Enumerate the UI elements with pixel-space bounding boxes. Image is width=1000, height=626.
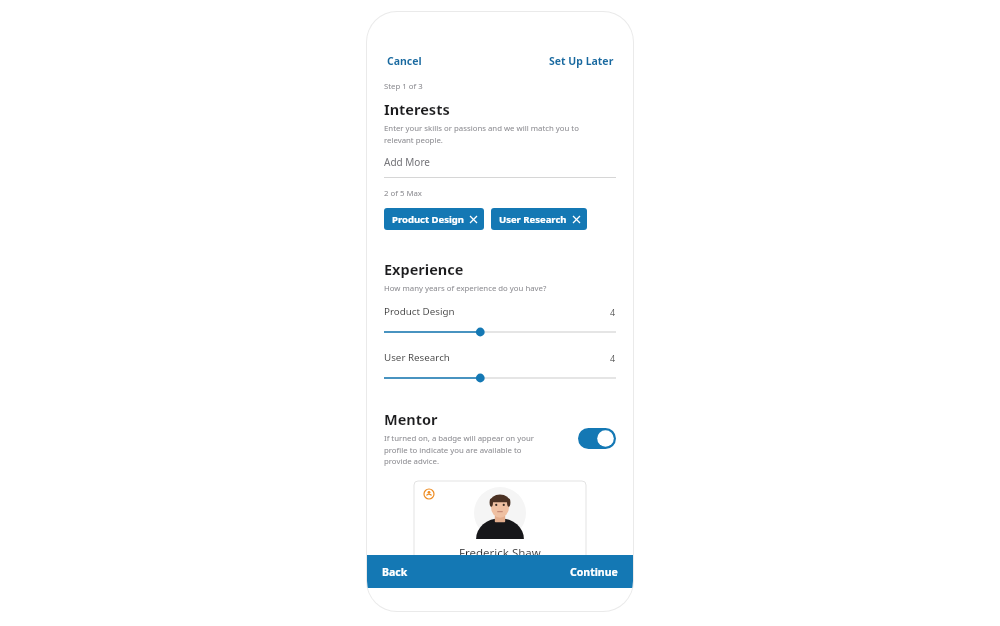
staticText: Mentor (384, 409, 438, 429)
button[interactable]: Add More (384, 155, 616, 178)
staticText: Enter your skills or passions and we wil… (384, 123, 579, 145)
staticText: Product Design (392, 213, 464, 226)
staticText: Continue (570, 565, 618, 579)
staticText: Step 1 of 3 (384, 81, 423, 92)
button[interactable]: Cancel (383, 50, 426, 72)
other: Remove User Research (573, 216, 580, 223)
button[interactable] (414, 481, 586, 581)
button[interactable]: Set Up Later (545, 50, 618, 72)
staticText: Experience (384, 259, 464, 279)
staticText: Cancel (387, 54, 422, 68)
staticText: Product Design (384, 305, 455, 318)
staticText: Back (382, 565, 408, 579)
button[interactable]: User Research (491, 208, 587, 230)
button[interactable]: Product Design years (384, 326, 616, 338)
staticText: Interests (384, 99, 450, 119)
staticText: Frederick Shaw (459, 545, 541, 561)
staticText: User Research (499, 213, 567, 226)
button[interactable]: Mentor toggle, on (578, 428, 616, 449)
button[interactable]: Product Design (384, 208, 484, 230)
staticText: User Research (384, 351, 450, 364)
other: Remove Product Design (470, 216, 477, 223)
staticText: 2 of 5 Max (384, 188, 422, 199)
button[interactable]: Continue (566, 561, 622, 583)
staticText: 4 (610, 352, 616, 364)
button[interactable]: User Research years (384, 372, 616, 384)
staticText: If turned on, a badge will appear on you… (384, 433, 534, 466)
staticText: Set Up Later (549, 54, 614, 68)
staticText: 4 (610, 306, 616, 318)
other: Mentor badge (424, 489, 434, 499)
button[interactable]: Back (378, 561, 412, 583)
staticText: How many years of experience do you have… (384, 283, 547, 294)
staticText: Add More (384, 155, 430, 169)
